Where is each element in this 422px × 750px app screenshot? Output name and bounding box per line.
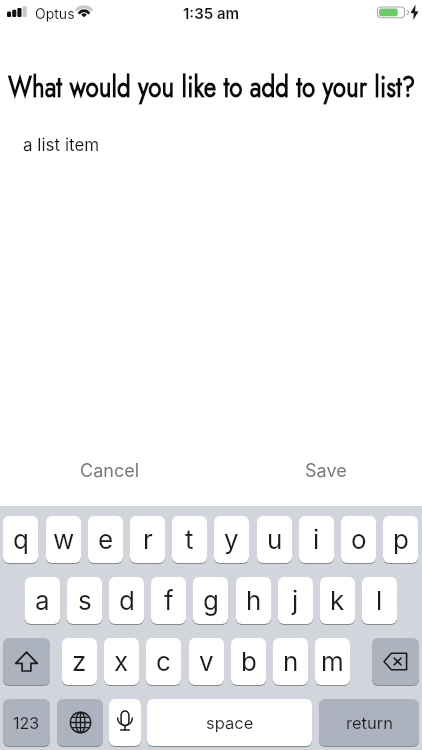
staticText: o [351, 524, 367, 555]
button[interactable]: b [231, 638, 266, 685]
button[interactable]: r [130, 516, 165, 563]
button[interactable]: x [104, 638, 139, 685]
staticText: v [199, 646, 214, 677]
staticText: t [185, 524, 194, 555]
staticText: m [321, 646, 344, 677]
staticText: l [376, 585, 383, 616]
staticText: a list item [23, 135, 100, 156]
button[interactable]: Save [295, 452, 337, 474]
staticText: p [393, 524, 409, 555]
staticText: z [72, 646, 87, 677]
button[interactable]: i [299, 516, 334, 563]
staticText: x [114, 646, 129, 677]
button[interactable]: a [25, 577, 60, 624]
button[interactable]: m [315, 638, 350, 685]
button[interactable]: z [62, 638, 97, 685]
button[interactable]: t [172, 516, 207, 563]
staticText: i [313, 524, 320, 555]
button[interactable]: y [214, 516, 249, 563]
button[interactable]: l [362, 577, 397, 624]
staticText: j [292, 585, 299, 616]
staticText: s [78, 585, 92, 616]
staticText: Save [305, 460, 347, 482]
staticText: Optus [35, 5, 75, 22]
button[interactable]: g [193, 577, 228, 624]
staticText: return [346, 713, 393, 733]
staticText: What would you like to add to your list? [8, 66, 360, 108]
staticText: d [119, 585, 135, 616]
staticText: Cancel [80, 460, 140, 482]
staticText: f [164, 585, 174, 616]
button[interactable]: h [236, 577, 271, 624]
button[interactable]: 123 [3, 699, 50, 746]
button[interactable]: w [46, 516, 81, 563]
button[interactable]: space [147, 699, 312, 746]
staticText: n [283, 646, 299, 677]
button[interactable]: j [278, 577, 313, 624]
staticText: w [53, 524, 75, 555]
button[interactable] [372, 638, 419, 685]
button[interactable]: u [257, 516, 292, 563]
staticText: q [13, 524, 29, 555]
button[interactable] [109, 699, 141, 746]
button[interactable] [57, 699, 103, 746]
staticText: a [35, 585, 50, 616]
staticText: h [246, 585, 262, 616]
button[interactable] [3, 638, 50, 685]
button[interactable]: k [320, 577, 355, 624]
staticText: e [98, 524, 114, 555]
staticText: u [267, 524, 283, 555]
staticText: r [143, 524, 153, 555]
button[interactable]: s [67, 577, 102, 624]
button[interactable]: c [146, 638, 181, 685]
button[interactable]: d [109, 577, 144, 624]
button[interactable]: f [151, 577, 186, 624]
staticText: g [203, 585, 219, 616]
staticText: c [156, 646, 171, 677]
staticText: b [241, 646, 257, 677]
button[interactable]: e [88, 516, 123, 563]
button[interactable]: v [189, 638, 224, 685]
button[interactable]: o [341, 516, 376, 563]
staticText: k [330, 585, 345, 616]
button[interactable]: n [273, 638, 308, 685]
button[interactable]: return [319, 699, 419, 746]
button[interactable]: Cancel [70, 452, 130, 474]
button[interactable]: q [3, 516, 38, 563]
button[interactable]: p [383, 516, 418, 563]
staticText: 123 [13, 713, 40, 732]
staticText: space [206, 713, 254, 733]
staticText: 1:35 am [183, 4, 240, 22]
staticText: y [224, 524, 239, 555]
